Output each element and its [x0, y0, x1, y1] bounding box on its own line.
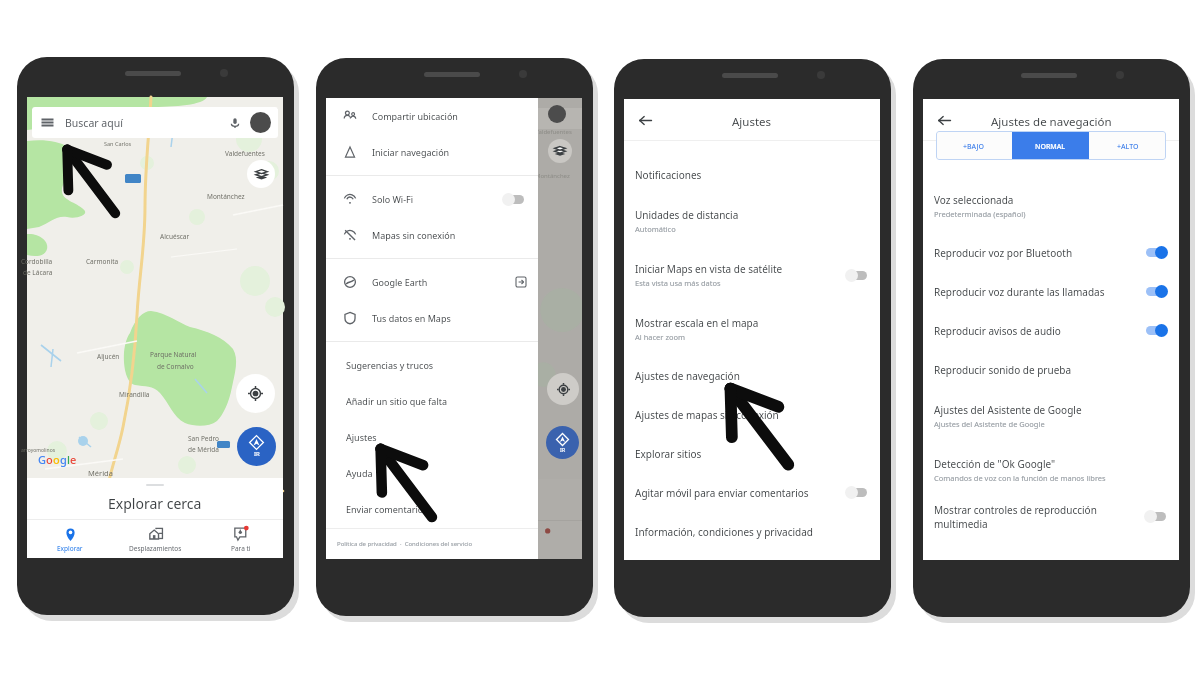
button[interactable]: Notificaciones	[624, 155, 880, 194]
button[interactable]: Agitar móvil para enviar comentarios	[624, 473, 880, 512]
staticText: Información, condiciones y privacidad	[635, 525, 813, 539]
button[interactable]: Capas	[548, 139, 572, 163]
staticText: Valdefuentes	[538, 128, 572, 136]
staticText: Reproducir avisos de audio	[934, 324, 1061, 338]
staticText: Voz seleccionada	[934, 193, 1014, 207]
button[interactable]: Ajustes de navegación	[624, 356, 880, 395]
staticText: l	[67, 452, 70, 467]
staticText: arroyomolinos	[21, 447, 56, 454]
button[interactable]: Ajustes del Asistente de Google	[923, 389, 1179, 443]
staticText: Comandos de voz con la función de manos …	[934, 473, 1106, 483]
staticText: Ajustes	[732, 114, 772, 130]
button[interactable]: Unidades de distancia	[624, 194, 880, 248]
staticText: Añadir un sitio que falta	[346, 395, 448, 407]
staticText: Mapas sin conexión	[372, 229, 456, 241]
staticText: Montánchez	[538, 172, 570, 180]
button[interactable]: Atrás	[634, 109, 656, 131]
staticText: Al hacer zoom	[635, 332, 686, 342]
button[interactable]: Detección de "Ok Google"	[923, 443, 1179, 497]
button[interactable]: Añadir un sitio que falta	[326, 383, 538, 419]
staticText: de Mérida	[188, 445, 219, 454]
staticText: Carmonita	[86, 257, 119, 266]
staticText: Reproducir sonido de prueba	[934, 363, 1072, 377]
button[interactable]: Ajustes de mapas sin conexión	[624, 395, 880, 434]
staticText: Sugerencias y trucos	[346, 359, 434, 371]
button[interactable]: Ir	[237, 427, 276, 466]
button[interactable]: Mi ubicación	[547, 373, 579, 405]
staticText: Para ti	[231, 544, 251, 553]
button[interactable]: Reproducir sonido de prueba	[923, 350, 1179, 389]
staticText: Unidades de distancia	[635, 208, 739, 222]
button[interactable]: Iniciar navegación	[326, 134, 538, 170]
button[interactable]: Reproducir voz durante las llamadas	[923, 272, 1179, 311]
staticText: Automático	[635, 224, 676, 234]
button[interactable]: Cuenta	[548, 105, 566, 123]
staticText: g	[60, 452, 67, 467]
button[interactable]: Google Earth	[326, 264, 538, 300]
button[interactable]: Política de privacidad · Condiciones del…	[326, 529, 538, 559]
button[interactable]: Solo Wi-Fi	[326, 181, 538, 217]
staticText: de Lácara	[23, 268, 53, 277]
staticText: Iniciar navegación	[372, 146, 450, 158]
staticText: Ajustes de navegación	[991, 114, 1112, 130]
button[interactable]: Tus datos en Maps	[326, 300, 538, 336]
button[interactable]: Mapas sin conexión	[326, 217, 538, 253]
button[interactable]: Reproducir avisos de audio	[923, 311, 1179, 350]
button[interactable]: Sugerencias y trucos	[326, 347, 538, 383]
button[interactable]: Enviar comentarios	[326, 491, 538, 527]
staticText: Montánchez	[207, 192, 245, 201]
button[interactable]: Cuenta	[250, 112, 271, 133]
button[interactable]: Información, condiciones y privacidad	[624, 512, 880, 551]
button[interactable]: Capas	[247, 160, 275, 188]
button[interactable]: Explorar cerca	[27, 478, 283, 519]
staticText: Buscar aquí	[65, 116, 123, 130]
staticText: +ALTO	[1117, 142, 1139, 152]
staticText: Ajustes	[346, 431, 377, 443]
staticText: Predeterminada (español)	[934, 209, 1026, 219]
staticText: Parque Natural	[150, 350, 197, 359]
button[interactable]: Iniciar Maps en vista de satélite	[624, 248, 880, 302]
staticText: San Pedro	[188, 434, 220, 443]
staticText: Mirandilla	[119, 390, 150, 399]
button[interactable]: Para ti	[198, 520, 283, 558]
staticText: Reproducir voz por Bluetooth	[934, 246, 1073, 260]
button[interactable]: Voz seleccionada	[923, 179, 1179, 233]
staticText: Explorar	[57, 544, 83, 553]
button[interactable]: Mi ubicación	[236, 374, 275, 413]
staticText: Reproducir voz durante las llamadas	[934, 285, 1105, 299]
staticText: Agitar móvil para enviar comentarios	[635, 486, 809, 500]
staticText: Ajustes de mapas sin conexión	[635, 408, 779, 422]
button[interactable]: Explorar sitios	[624, 434, 880, 473]
staticText: Iniciar Maps en vista de satélite	[635, 262, 783, 276]
staticText: Google Earth	[372, 276, 428, 288]
staticText: Ajustes de navegación	[635, 369, 740, 383]
staticText: Cordobilla	[21, 257, 53, 266]
button[interactable]: +BAJO	[936, 131, 1012, 160]
staticText: G	[38, 452, 46, 467]
staticText: Ayuda	[346, 467, 373, 479]
staticText: Valdefuentes	[225, 149, 265, 158]
staticText: e	[70, 452, 77, 467]
staticText: o	[53, 452, 60, 467]
button[interactable]: Ayuda	[326, 455, 538, 491]
button[interactable]: Reproducir voz por Bluetooth	[923, 233, 1179, 272]
button[interactable]: NORMAL	[1012, 131, 1089, 160]
button[interactable]: Atrás	[933, 109, 955, 131]
staticText: Compartir ubicación	[372, 110, 458, 122]
staticText: +BAJO	[963, 142, 985, 152]
button[interactable]: Ajustes	[326, 419, 538, 455]
button[interactable]: Mostrar controles de reproducción multim…	[923, 497, 1179, 536]
button[interactable]: Explorar	[27, 520, 113, 558]
button[interactable]: Ir	[546, 426, 579, 459]
button[interactable]: Compartir ubicación	[326, 98, 538, 134]
button[interactable]: Desplazamientos	[113, 520, 198, 558]
staticText: San Carlos	[104, 140, 132, 147]
staticText: de Cornalvo	[157, 362, 194, 371]
button[interactable]: Mostrar escala en el mapa	[624, 302, 880, 356]
staticText: Mostrar escala en el mapa	[635, 316, 759, 330]
button[interactable]: Buscar aquí	[32, 107, 278, 138]
button[interactable]: +ALTO	[1089, 131, 1166, 160]
staticText: Aljucén	[97, 352, 120, 361]
staticText: Solo Wi-Fi	[372, 193, 414, 205]
staticText: Esta vista usa más datos	[635, 278, 721, 288]
